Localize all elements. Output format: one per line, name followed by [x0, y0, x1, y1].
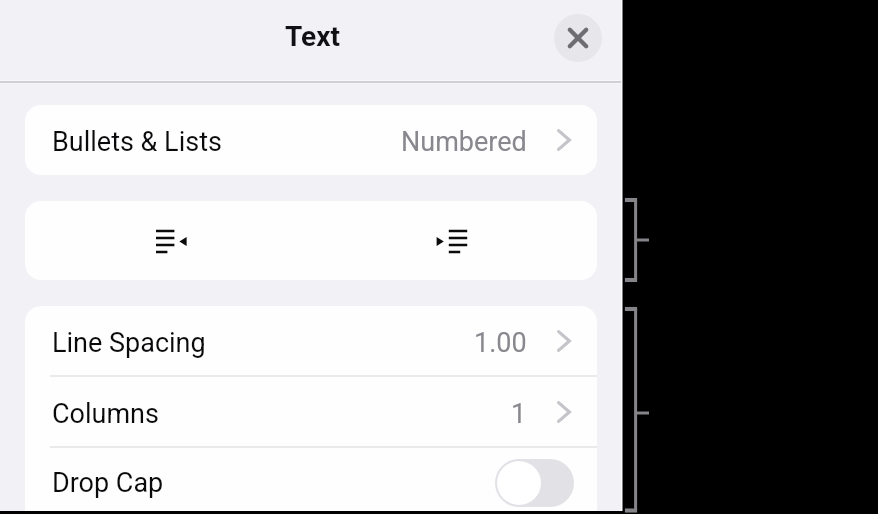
staticText: Numbered: [401, 126, 527, 158]
button[interactable]: Bullets & Lists: [25, 105, 597, 175]
staticText: Columns: [52, 398, 159, 430]
staticText: Drop Cap: [52, 467, 164, 499]
button[interactable]: Columns: [25, 377, 597, 446]
button[interactable]: Drop Cap: [25, 448, 597, 514]
staticText: 1.00: [474, 327, 527, 359]
staticText: Text: [285, 20, 340, 53]
staticText: 1: [511, 398, 527, 430]
staticText: Line Spacing: [52, 327, 206, 359]
button[interactable]: Close: [554, 14, 602, 62]
button[interactable]: Drop Cap: [495, 459, 574, 507]
button[interactable]: Decrease indent: [25, 201, 311, 280]
staticText: Bullets & Lists: [52, 126, 222, 158]
button[interactable]: Increase indent: [311, 201, 597, 280]
button[interactable]: Line Spacing: [25, 306, 597, 375]
